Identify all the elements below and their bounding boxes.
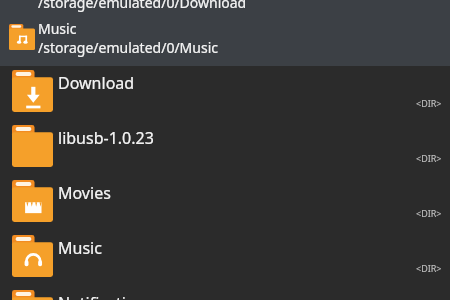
staticText: Music	[58, 237, 102, 259]
staticText: <DIR>	[416, 152, 442, 164]
staticText: <DIR>	[416, 207, 442, 219]
staticText: Notifications	[58, 292, 154, 300]
staticText: <DIR>	[416, 262, 442, 274]
staticText: libusb-1.0.23	[58, 127, 154, 149]
button[interactable]: Notifications	[0, 286, 450, 300]
staticText: Movies	[58, 182, 111, 204]
button[interactable]: Movies	[0, 176, 450, 231]
staticText: /storage/emulated/0/Download	[38, 0, 247, 12]
button[interactable]: Music	[0, 231, 450, 286]
staticText: Music	[38, 19, 77, 38]
button[interactable]: Download	[0, 66, 450, 121]
button[interactable]: libusb-1.0.23	[0, 121, 450, 176]
button[interactable]: Music	[0, 20, 450, 64]
staticText: Download	[58, 72, 135, 94]
staticText: /storage/emulated/0/Music	[38, 38, 218, 57]
staticText: <DIR>	[416, 97, 442, 109]
